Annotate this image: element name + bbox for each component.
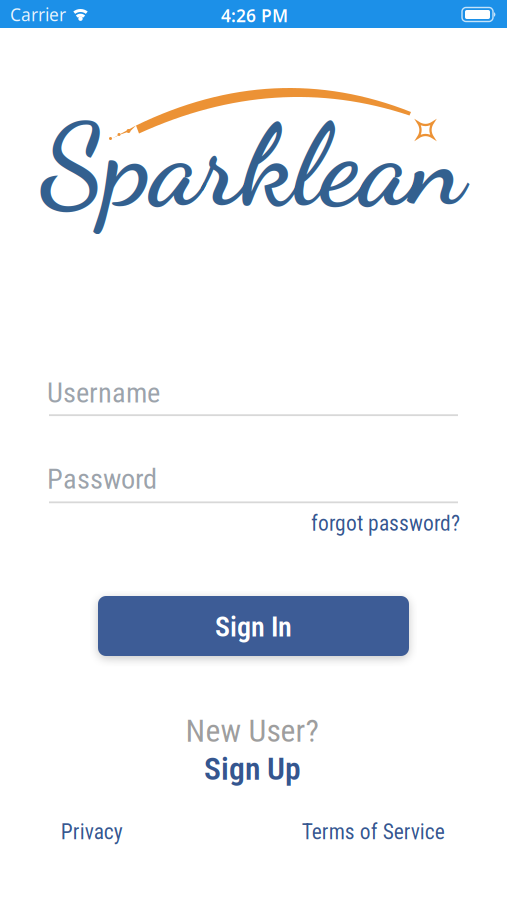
staticText: New User?	[185, 712, 318, 750]
button[interactable]: Terms of Service	[302, 819, 445, 845]
staticText: Password	[47, 462, 157, 496]
button[interactable]: Username	[49, 375, 458, 416]
staticText: Username	[47, 376, 160, 409]
staticText: Sign Up	[204, 750, 301, 787]
staticText: Sign In	[215, 611, 292, 643]
button[interactable]: Sign In	[98, 596, 409, 656]
button[interactable]: Password	[49, 461, 458, 503]
button[interactable]: Privacy	[61, 819, 123, 845]
button[interactable]: forgot password?	[51, 511, 460, 536]
staticText: forgot password?	[311, 511, 460, 536]
button[interactable]: Sign Up	[204, 750, 301, 787]
staticText: Carrier	[10, 3, 66, 26]
staticText: Terms of Service	[302, 819, 445, 845]
staticText: Sparklean	[40, 98, 465, 234]
staticText: Privacy	[61, 819, 123, 845]
staticText: 4:26 PM	[221, 4, 288, 27]
